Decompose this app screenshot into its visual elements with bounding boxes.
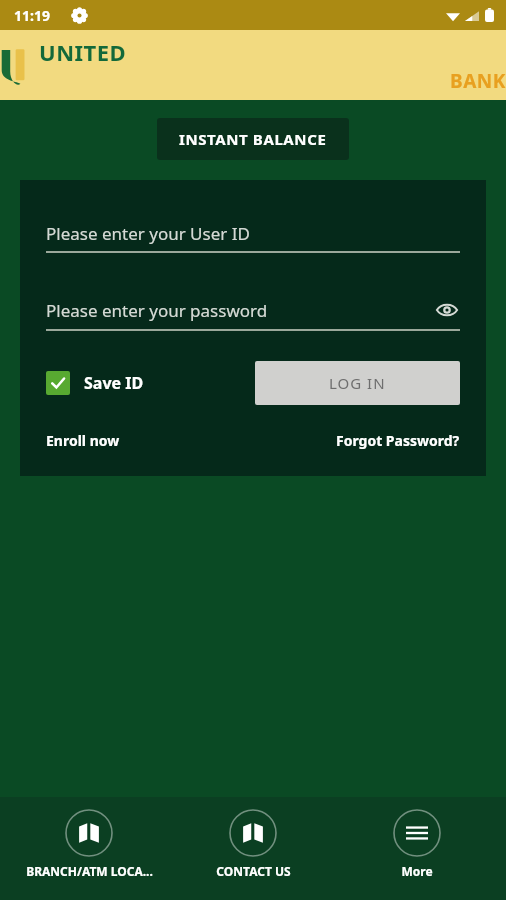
staticText: Please enter your User ID (46, 222, 250, 245)
staticText: Save ID (84, 372, 144, 394)
button[interactable]: CONTACT US (178, 809, 328, 879)
staticText: More (401, 863, 433, 879)
button[interactable]: More (342, 809, 492, 879)
button[interactable]: Enroll now (46, 431, 120, 450)
staticText: BRANCH/ATM LOCA... (26, 863, 153, 879)
staticText: CONTACT US (216, 863, 291, 879)
staticText: Please enter your password (46, 299, 268, 322)
staticText: 11:19 (14, 6, 50, 25)
button[interactable]: Please enter your User ID (46, 222, 460, 245)
button[interactable]: Please enter your password (46, 297, 460, 323)
button[interactable]: LOG IN (255, 361, 460, 405)
button[interactable]: BRANCH/ATM LOCA... (14, 809, 164, 879)
staticText: INSTANT BALANCE (179, 129, 327, 149)
button[interactable]: Show password (434, 297, 460, 323)
button[interactable]: INSTANT BALANCE (157, 118, 349, 160)
button[interactable]: Forgot Password? (336, 431, 460, 450)
staticText: UNITED (39, 37, 127, 67)
staticText: LOG IN (329, 373, 386, 393)
button[interactable]: Save ID (46, 371, 144, 395)
staticText: BANK (450, 68, 506, 94)
